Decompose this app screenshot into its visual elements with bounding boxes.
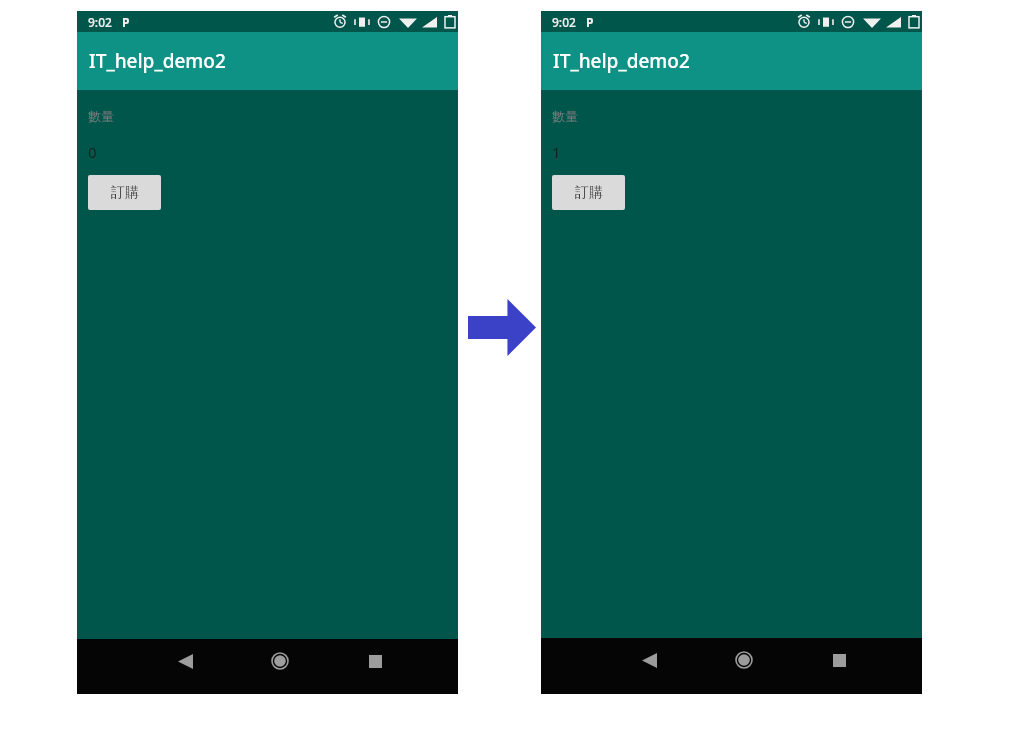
staticText: IT_help_demo2: [553, 48, 690, 74]
staticText: 9:02: [88, 14, 112, 30]
button[interactable]: Back: [627, 638, 671, 682]
staticText: 訂購: [111, 184, 139, 202]
staticText: 數量: [88, 108, 114, 124]
button[interactable]: 訂購: [552, 175, 625, 210]
button[interactable]: Home: [722, 638, 766, 682]
staticText: IT_help_demo2: [89, 48, 226, 74]
button[interactable]: 訂購: [88, 175, 161, 210]
button[interactable]: Back: [163, 639, 207, 683]
staticText: 9:02: [552, 14, 576, 30]
button[interactable]: Recents: [353, 639, 397, 683]
staticText: 0: [88, 142, 97, 162]
staticText: P: [122, 14, 130, 30]
button[interactable]: Home: [258, 639, 302, 683]
staticText: P: [586, 14, 594, 30]
button[interactable]: Recents: [817, 638, 861, 682]
staticText: 1: [552, 142, 561, 162]
staticText: 訂購: [575, 184, 603, 202]
staticText: 數量: [552, 108, 578, 124]
